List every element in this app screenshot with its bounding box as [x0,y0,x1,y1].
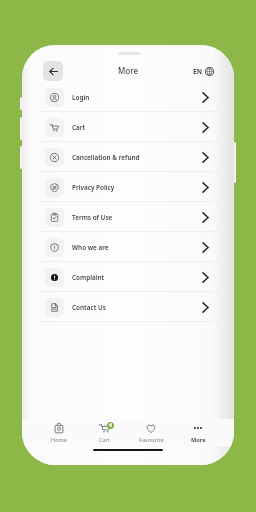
staticText: Home [51,436,67,444]
staticText: More [191,436,206,444]
button[interactable]: Terms of Use [22,202,234,232]
staticText: Cart [72,123,86,132]
button[interactable]: Who we are [22,232,234,262]
staticText: Favourite [139,436,164,444]
button[interactable]: Privacy Policy [22,172,234,202]
button[interactable]: EN [193,62,214,80]
button[interactable]: Cart [22,112,234,142]
button[interactable]: Complaint [22,262,234,292]
staticText: Contact Us [72,303,106,312]
staticText: Cart [99,436,111,444]
button[interactable]: 4 [83,419,127,447]
button[interactable]: Login [22,82,234,112]
staticText: 4 [109,422,112,429]
button[interactable]: Cancellation & refund [22,142,234,172]
staticText: Terms of Use [72,213,113,222]
button[interactable]: Home [37,419,81,447]
button[interactable]: Contact Us [22,292,234,322]
staticText: Login [72,93,90,102]
button[interactable]: Back [43,61,63,81]
staticText: EN [193,67,202,76]
staticText: Privacy Policy [72,183,115,192]
button[interactable]: More [176,419,220,447]
button[interactable]: Favourite [129,419,173,447]
staticText: Complaint [72,273,105,282]
staticText: More [118,65,139,76]
staticText: Cancellation & refund [72,153,140,162]
staticText: Who we are [72,243,109,252]
